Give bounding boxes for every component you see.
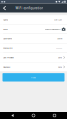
- staticText: ••••••: [56, 47, 62, 49]
- button[interactable]: Home: [27, 112, 40, 119]
- staticText: admin: [57, 37, 62, 40]
- staticText: Password: [3, 47, 12, 49]
- button[interactable]: Username: [0, 34, 67, 43]
- staticText: Next: [31, 76, 36, 79]
- staticText: yxdmsf5ffse00017: [44, 28, 60, 30]
- button[interactable]: Next: [2, 73, 64, 81]
- staticText: WiFi configuration: [15, 6, 43, 10]
- staticText: Username: [3, 37, 12, 40]
- button[interactable]: Password: [0, 43, 67, 53]
- staticText: Live Preview: [3, 56, 14, 59]
- button[interactable]: SSID: [0, 25, 67, 34]
- button[interactable]: Recent apps: [48, 112, 61, 119]
- staticText: Playback: [3, 66, 10, 68]
- button[interactable]: Playback: [0, 62, 67, 72]
- staticText: wifi cam: [54, 18, 62, 21]
- button[interactable]: Name: [0, 15, 67, 24]
- staticText: SSID: [3, 28, 7, 30]
- staticText: Done: [58, 56, 62, 59]
- button[interactable]: Back: [6, 112, 19, 119]
- staticText: Name: [3, 18, 8, 21]
- staticText: Done: [58, 66, 62, 68]
- button[interactable]: Live Preview: [0, 53, 67, 62]
- button[interactable]: Back: [0, 3, 9, 13]
